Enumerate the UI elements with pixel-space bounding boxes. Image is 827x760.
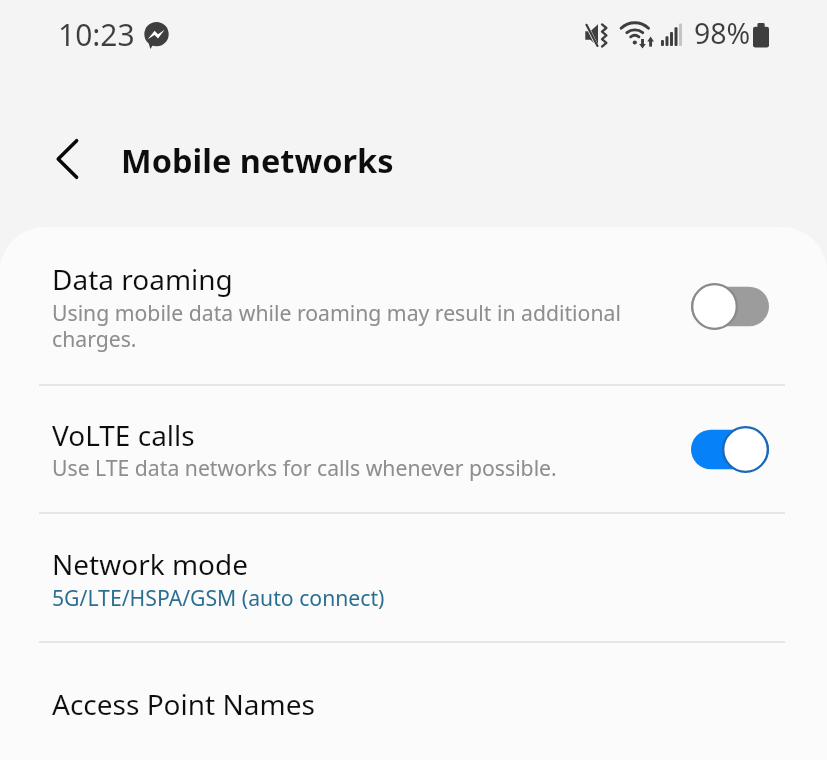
button[interactable]: Data roaming bbox=[0, 227, 827, 385]
staticText: Use LTE data networks for calls whenever… bbox=[52, 456, 672, 482]
staticText: Network mode bbox=[52, 545, 249, 583]
staticText: VoLTE calls bbox=[52, 416, 195, 454]
staticText: 10:23 bbox=[58, 14, 135, 55]
button[interactable]: Network mode bbox=[0, 513, 827, 642]
staticText: Access Point Names bbox=[52, 685, 315, 723]
staticText: Using mobile data while roaming may resu… bbox=[52, 301, 652, 353]
staticText: 5G/LTE/HSPA/GSM (auto connect) bbox=[52, 586, 672, 612]
staticText: Mobile networks bbox=[121, 138, 394, 182]
button[interactable]: Access Point Names bbox=[0, 642, 827, 760]
button[interactable]: Navigate up bbox=[38, 130, 96, 188]
button[interactable]: Data roaming, off bbox=[691, 283, 769, 330]
staticText: 98% bbox=[694, 14, 751, 53]
staticText: Data roaming bbox=[52, 260, 233, 298]
button[interactable]: VoLTE calls bbox=[0, 385, 827, 513]
button[interactable]: VoLTE calls, on bbox=[691, 426, 769, 473]
